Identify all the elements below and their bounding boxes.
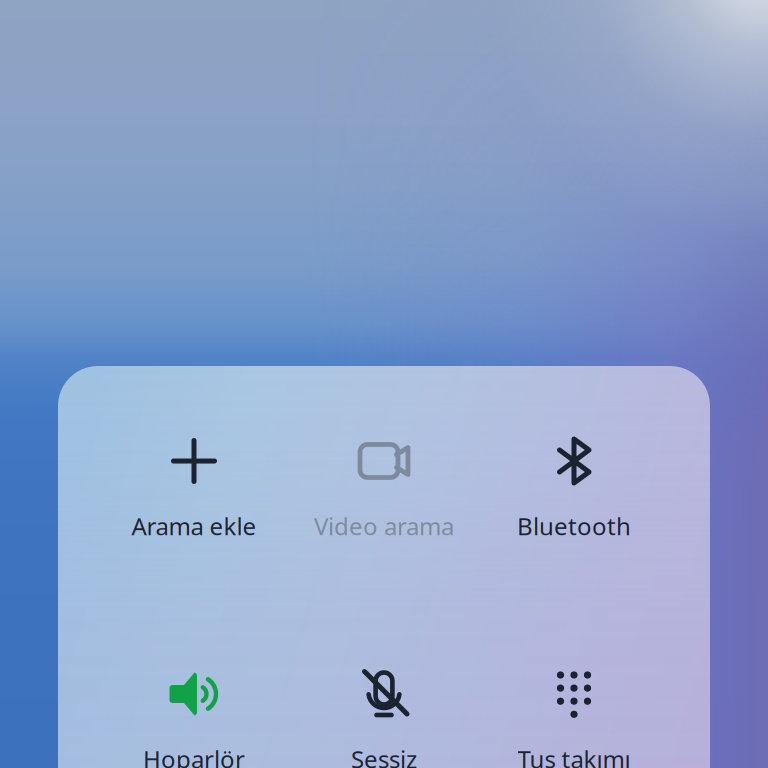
- staticText: Arama ekle: [131, 510, 256, 542]
- staticText: Video arama: [314, 510, 454, 542]
- button[interactable]: Tuş takımı: [479, 662, 669, 768]
- staticText: Hoparlör: [143, 743, 245, 768]
- button[interactable]: Hoparlör: [99, 662, 289, 768]
- button[interactable]: Sessiz: [289, 662, 479, 768]
- button[interactable]: Bluetooth: [479, 429, 669, 556]
- button[interactable]: Video arama: [289, 429, 479, 556]
- staticText: Bluetooth: [517, 510, 631, 542]
- button[interactable]: Arama ekle: [99, 429, 289, 556]
- staticText: Sessiz: [351, 743, 417, 768]
- staticText: Tuş takımı: [517, 743, 630, 768]
